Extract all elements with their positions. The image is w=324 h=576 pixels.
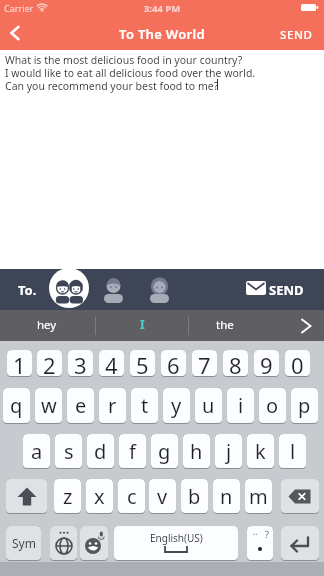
staticText: c [127,483,137,510]
staticText: 0 [291,350,304,376]
staticText: r [108,392,117,419]
staticText: h [190,438,203,465]
staticText: 3 [74,350,87,376]
staticText: z [63,483,73,510]
staticText: i [238,392,244,419]
staticText: y [171,392,182,419]
staticText: Carrier [4,2,34,14]
staticText: e [75,392,87,419]
staticText: hey [37,317,57,333]
staticText: SEND [280,27,313,43]
staticText: 6 [167,350,180,376]
staticText: k [255,438,266,465]
staticText: 5 [136,350,149,376]
staticText: j [226,438,232,465]
staticText: What is the most delicious food in your … [5,53,243,67]
staticText: m [249,483,268,510]
staticText: 3:44 PM [0,2,324,15]
staticText: f [129,438,136,465]
staticText: 4 [105,350,118,376]
staticText: 2 [43,350,56,376]
staticText: t [141,392,149,419]
staticText: 7 [198,350,211,376]
staticText: ? [265,528,269,540]
staticText: q [10,392,23,419]
staticText: .. [253,526,258,537]
staticText: Sym [12,535,36,551]
staticText: English(US) [150,531,203,545]
staticText: I would like to eat all delicious food o… [5,66,256,80]
staticText: o [266,392,279,419]
staticText: n [220,483,233,510]
staticText: s [64,438,74,465]
staticText: Can you recommend your best food to me? [5,79,219,93]
staticText: b [188,483,201,510]
staticText: a [31,438,43,465]
staticText: l [290,438,296,465]
staticText: 9 [260,350,273,376]
staticText: x [94,483,105,510]
staticText: I [140,316,145,332]
staticText: 8 [229,350,242,376]
staticText: the [216,317,234,333]
staticText: To The World [0,25,324,43]
staticText: w [41,392,57,419]
staticText: u [202,392,215,419]
staticText: 1 [13,350,26,376]
staticText: v [157,483,168,510]
staticText: d [94,438,107,465]
staticText: g [158,438,171,465]
staticText: SEND [269,281,304,299]
staticText: To. [18,281,37,299]
staticText: p [298,392,311,419]
